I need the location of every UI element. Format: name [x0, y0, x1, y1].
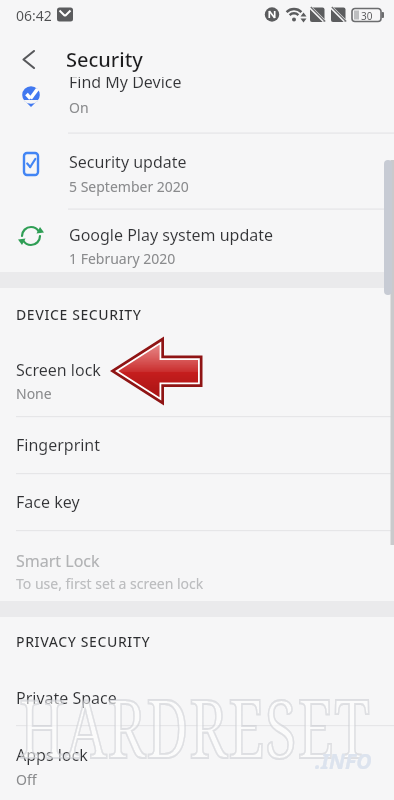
button[interactable] — [0, 474, 394, 530]
button[interactable] — [0, 133, 394, 209]
button[interactable] — [0, 726, 394, 800]
button[interactable] — [0, 660, 394, 720]
button[interactable] — [0, 340, 394, 416]
staticText: Google Play system update — [69, 224, 274, 246]
staticText: 06:42 — [16, 6, 52, 25]
staticText: 30 — [361, 9, 373, 23]
staticText: HARDRESET — [19, 671, 371, 782]
staticText: PRIVACY SECURITY — [16, 632, 151, 651]
button[interactable] — [0, 531, 394, 601]
staticText: To use, first set a screen lock — [16, 574, 204, 593]
staticText: Face key — [16, 491, 80, 513]
staticText: Screen lock — [16, 359, 101, 381]
staticText: Off — [16, 770, 37, 789]
staticText: None — [16, 384, 52, 403]
staticText: Private Space — [16, 687, 117, 709]
button[interactable] — [0, 77, 394, 133]
button[interactable] — [0, 209, 394, 272]
staticText: Smart Lock — [16, 550, 100, 572]
staticText: 1 February 2020 — [69, 249, 176, 268]
staticText: Security update — [69, 151, 187, 173]
staticText: Find My Device — [69, 71, 182, 93]
staticText: HARDRESET — [19, 671, 371, 782]
staticText: Security — [66, 46, 143, 73]
staticText: Fingerprint — [16, 434, 101, 456]
staticText: Apps lock — [16, 744, 88, 766]
staticText: DEVICE SECURITY — [16, 305, 142, 324]
button[interactable] — [0, 417, 394, 473]
staticText: On — [69, 98, 89, 117]
button[interactable] — [10, 45, 48, 83]
staticText: 5 September 2020 — [69, 177, 189, 196]
staticText: .INFO — [315, 747, 372, 776]
